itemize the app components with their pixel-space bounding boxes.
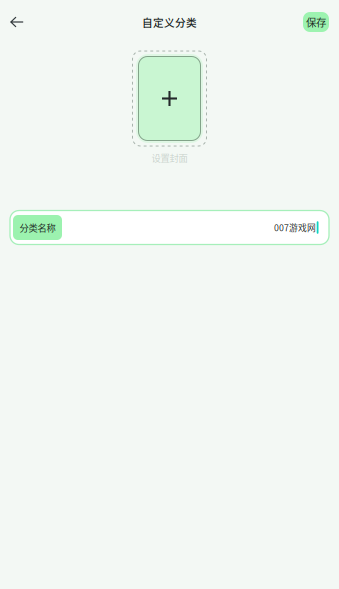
staticText: 分类名称 <box>19 221 55 234</box>
staticText: 保存 <box>306 14 326 30</box>
button[interactable]: Back <box>0 5 34 39</box>
button[interactable]: 设置封面 <box>132 51 206 146</box>
staticText: 007游戏网 <box>274 221 316 234</box>
button[interactable]: 保存 <box>303 12 329 32</box>
staticText: 自定义分类 <box>142 14 197 30</box>
staticText: 设置封面 <box>151 151 187 164</box>
